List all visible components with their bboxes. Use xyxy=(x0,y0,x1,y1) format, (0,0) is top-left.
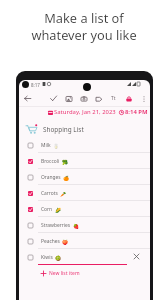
staticText: Milk xyxy=(41,142,51,149)
staticText: Oranges xyxy=(41,174,61,181)
button[interactable]: Tt xyxy=(106,92,121,105)
staticText: 🥦 xyxy=(62,159,69,165)
button[interactable]: Done xyxy=(46,92,61,105)
button[interactable]: Shopping List xyxy=(26,124,84,135)
button[interactable]: Corn xyxy=(19,201,150,217)
staticText: Carrots xyxy=(41,190,58,197)
button[interactable]: Remove item xyxy=(134,254,139,259)
staticText: Corn xyxy=(41,206,53,213)
staticText: Make a list of xyxy=(44,9,124,26)
button[interactable]: Broccoli xyxy=(19,153,150,169)
button[interactable]: New list item xyxy=(41,266,80,280)
button[interactable]: Strawberries xyxy=(19,217,150,233)
button[interactable]: Oranges xyxy=(19,169,150,185)
staticText: 🍓 xyxy=(73,223,80,229)
staticText: 🍑 xyxy=(62,239,69,245)
staticText: Peaches xyxy=(41,238,60,245)
staticText: Strawberries xyxy=(41,222,71,229)
staticText: 8:14 PM xyxy=(125,108,148,116)
button[interactable]: Milk xyxy=(19,137,150,153)
button[interactable]: Label xyxy=(91,92,106,105)
button[interactable]: Add image xyxy=(61,92,76,105)
staticText: 8:17 xyxy=(31,82,40,88)
button[interactable]: Camera xyxy=(76,92,91,105)
staticText: Shopping List xyxy=(43,125,84,134)
button[interactable]: More options xyxy=(136,92,150,105)
button[interactable]: Kiwis xyxy=(19,249,150,265)
staticText: 🌽 xyxy=(55,207,62,213)
staticText: Tt xyxy=(111,95,116,102)
staticText: 🥛 xyxy=(53,143,60,149)
button[interactable]: Back xyxy=(20,92,35,105)
staticText: 🥝 xyxy=(55,255,62,261)
staticText: New list item xyxy=(49,270,80,277)
button[interactable]: Lock xyxy=(121,92,136,105)
staticText: 🍊 xyxy=(63,175,70,181)
button[interactable]: Carrots xyxy=(19,185,150,201)
button[interactable]: Peaches xyxy=(19,233,150,249)
staticText: 🥕 xyxy=(60,191,67,197)
staticText: Broccoli xyxy=(41,158,60,165)
staticText: whatever you like xyxy=(31,26,137,43)
staticText: Saturday, Jan 21, 2023 xyxy=(54,108,116,116)
staticText: Kiwis xyxy=(41,254,53,261)
